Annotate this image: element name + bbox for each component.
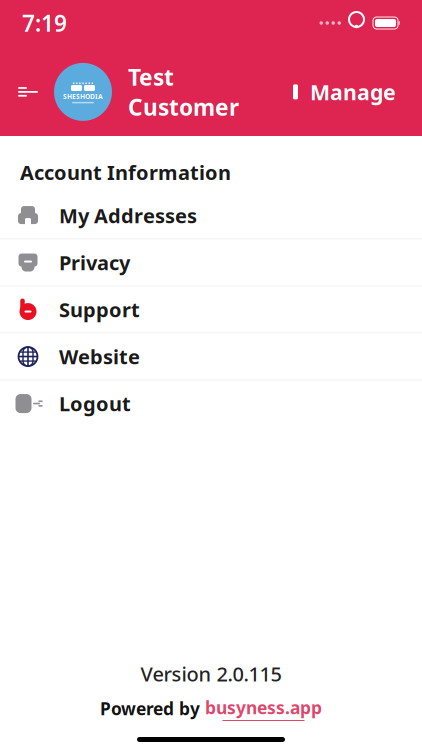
button[interactable]: Manage: [284, 70, 400, 114]
staticText: My Addresses: [59, 202, 197, 229]
button[interactable]: Back: [6, 70, 50, 114]
staticText: Version 2.0.115: [140, 660, 281, 687]
staticText: Powered by: [100, 697, 200, 720]
button[interactable]: Privacy: [0, 240, 422, 286]
staticText: Account Information: [20, 159, 231, 186]
staticText: 7:19: [22, 8, 67, 38]
button[interactable]: Website: [0, 334, 422, 380]
staticText: Website: [59, 343, 140, 370]
staticText: Test Customer: [128, 62, 239, 122]
button[interactable]: Logout: [0, 381, 422, 427]
button[interactable]: My Addresses: [0, 193, 422, 239]
staticText: Support: [59, 296, 140, 323]
button[interactable]: busyness.app: [205, 696, 322, 721]
button[interactable]: Support: [0, 287, 422, 333]
staticText: Logout: [59, 390, 131, 417]
staticText: Manage: [310, 78, 396, 106]
staticText: SHESHODIA: [63, 92, 103, 101]
staticText: busyness.app: [205, 696, 322, 719]
staticText: Privacy: [59, 249, 130, 276]
